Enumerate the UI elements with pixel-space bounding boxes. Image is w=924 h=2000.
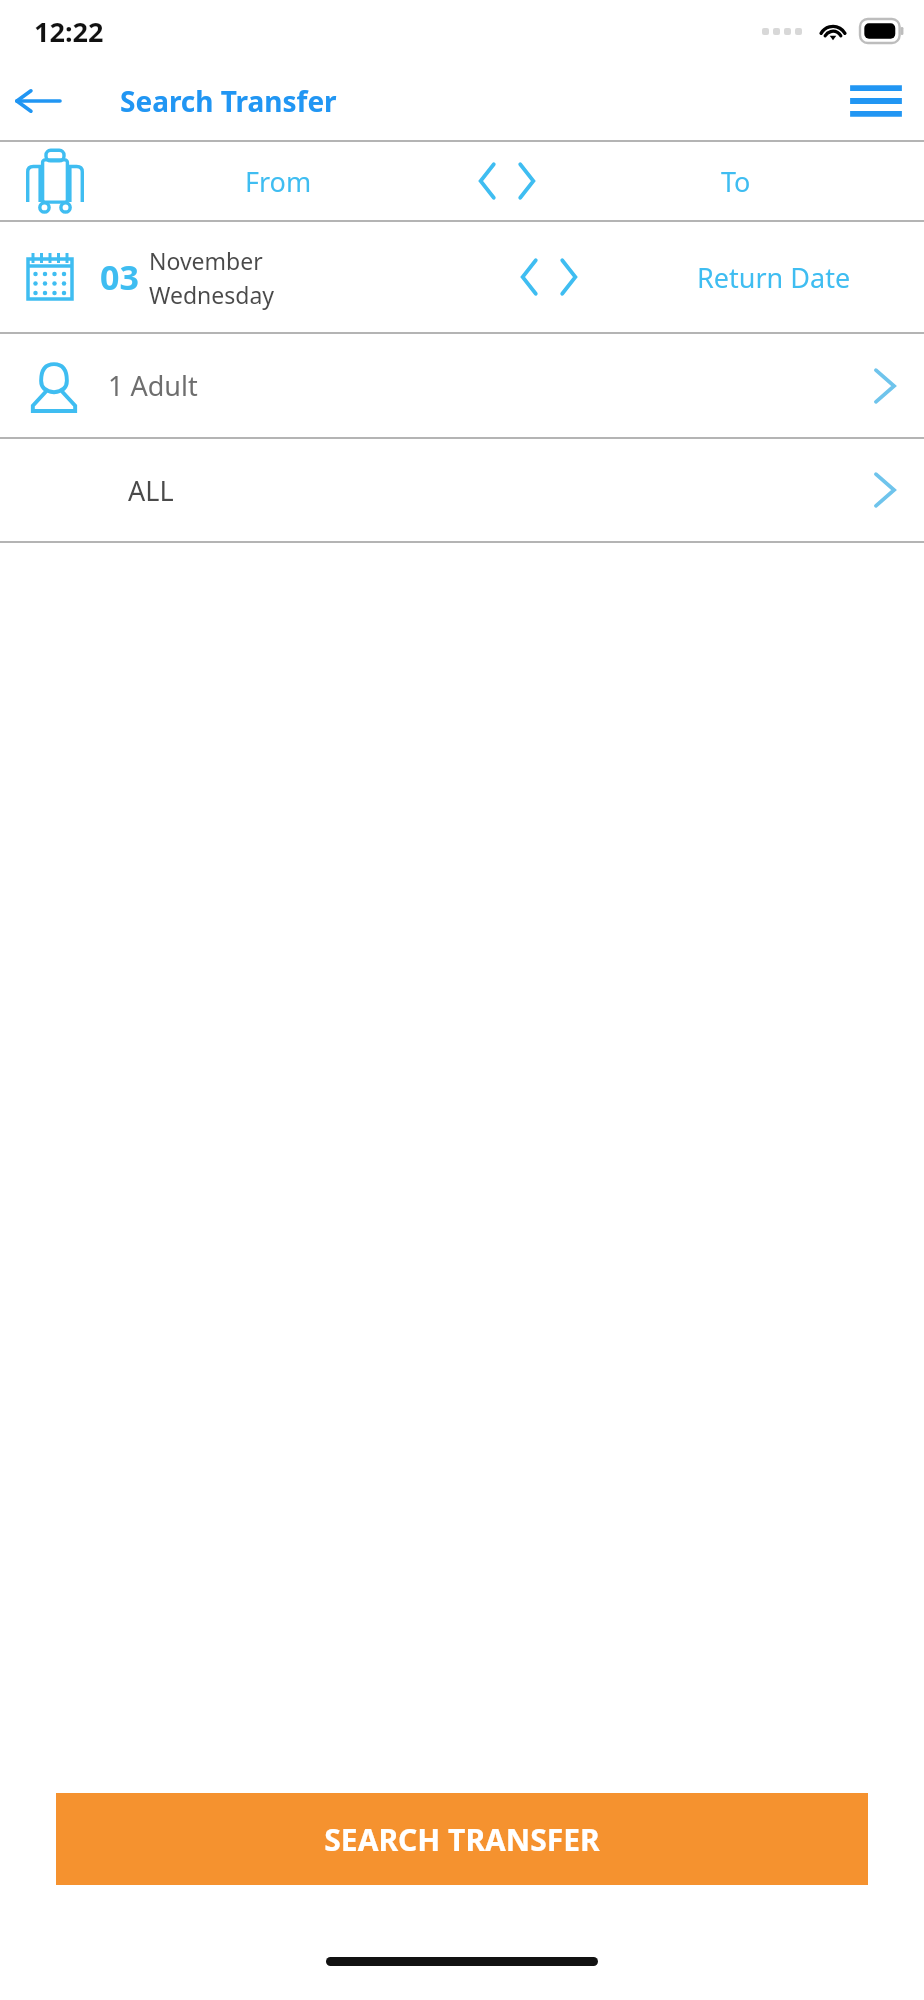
button[interactable]: Back [0,63,76,139]
staticText: From [245,163,312,200]
staticText: November [149,245,263,276]
button[interactable]: From [0,142,924,220]
button[interactable]: 1 Adult [0,334,924,437]
button[interactable]: SEARCH TRANSFER [56,1793,868,1885]
staticText: SEARCH TRANSFER [324,1819,600,1860]
staticText: ALL [128,472,174,509]
staticText: 03 [100,254,139,300]
staticText: 12:22 [34,13,104,50]
button[interactable]: ALL [0,439,924,541]
button[interactable]: 03 [0,222,924,332]
button[interactable]: Menu [840,65,912,137]
staticText: To [721,163,751,200]
staticText: Search Transfer [120,82,337,120]
staticText: Return Date [697,259,851,296]
staticText: Wednesday [149,279,275,310]
staticText: 1 Adult [108,367,198,404]
